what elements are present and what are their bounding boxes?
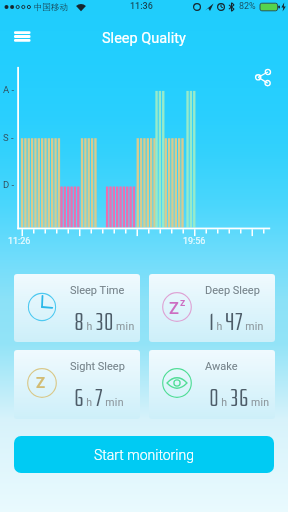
staticText: Z: [169, 299, 179, 318]
staticText: 1 h 47 min: [209, 310, 264, 336]
staticText: A -: [3, 84, 15, 95]
staticText: 11:36: [130, 1, 153, 12]
button[interactable]: Z: [149, 274, 275, 342]
staticText: Start monitoring: [94, 447, 194, 463]
staticText: S -: [3, 132, 14, 143]
staticText: 中国移动: [34, 2, 68, 13]
staticText: D -: [3, 179, 15, 190]
staticText: Z: [36, 374, 46, 392]
staticText: 8 h 30 min: [74, 310, 135, 336]
staticText: Sight Sleep: [70, 360, 125, 373]
staticText: Sleep Quality: [102, 30, 186, 47]
staticText: Deep Sleep: [205, 284, 260, 297]
staticText: 6 h 7 min: [74, 386, 124, 412]
staticText: 11:26: [8, 236, 31, 247]
staticText: z: [180, 296, 186, 308]
staticText: 0 h 36 min: [209, 386, 270, 412]
staticText: 82%: [239, 1, 256, 12]
button[interactable]: Start monitoring: [14, 436, 274, 473]
staticText: Awake: [205, 360, 238, 373]
staticText: 19:56: [183, 236, 206, 247]
staticText: Sleep Time: [70, 284, 125, 297]
button[interactable]: [248, 64, 276, 91]
button[interactable]: Sleep Time: [14, 274, 140, 342]
button[interactable]: [8, 24, 38, 49]
button[interactable]: Z: [14, 350, 140, 419]
button[interactable]: Awake: [149, 350, 275, 419]
